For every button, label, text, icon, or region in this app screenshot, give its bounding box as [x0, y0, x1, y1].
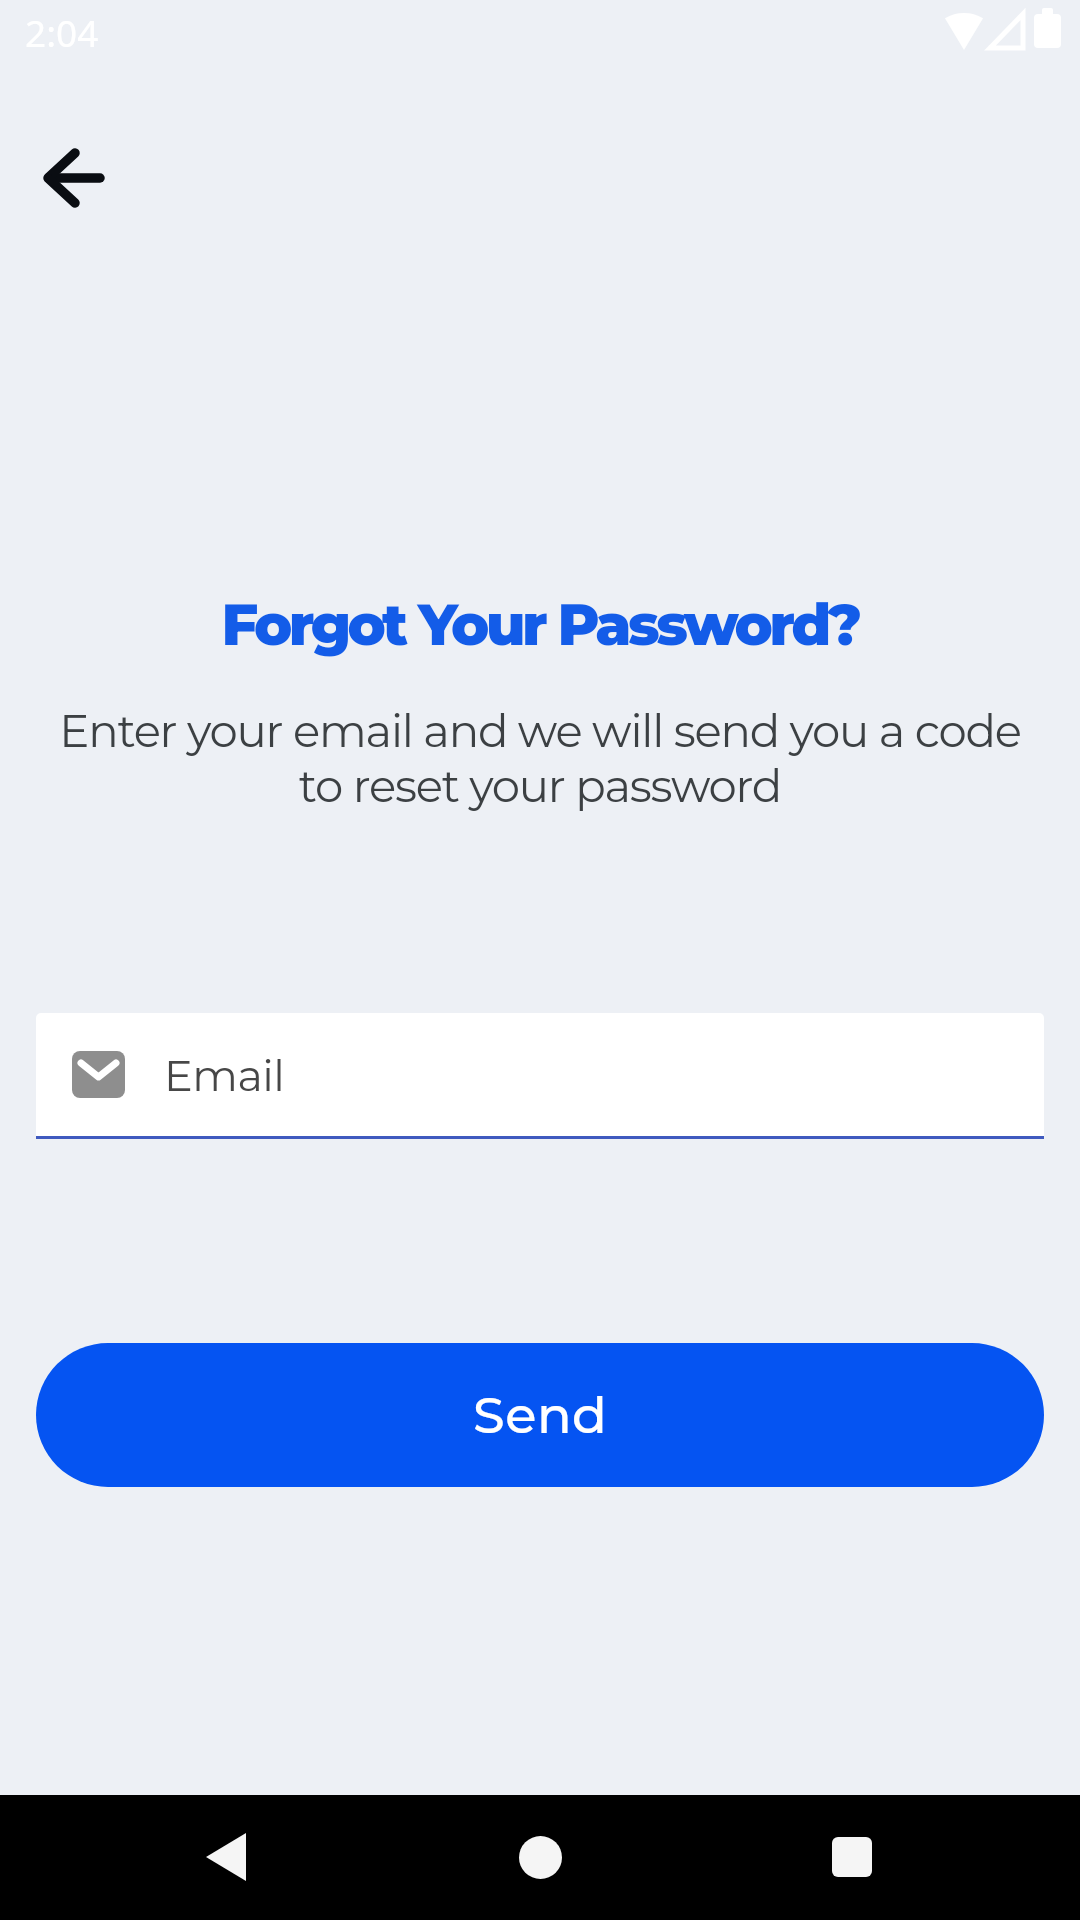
- button[interactable]: [812, 1817, 892, 1897]
- staticText: Email: [164, 1049, 285, 1101]
- button[interactable]: [185, 1817, 265, 1897]
- staticText: Enter your email and we will send you a …: [0, 703, 1080, 813]
- staticText: 2:04: [25, 7, 99, 57]
- button[interactable]: [28, 132, 120, 224]
- button[interactable]: Email: [36, 1013, 1044, 1136]
- button[interactable]: [500, 1817, 580, 1897]
- button[interactable]: Send: [36, 1343, 1044, 1487]
- staticText: Send: [473, 1384, 608, 1446]
- staticText: Forgot Your Password?: [0, 590, 1080, 659]
